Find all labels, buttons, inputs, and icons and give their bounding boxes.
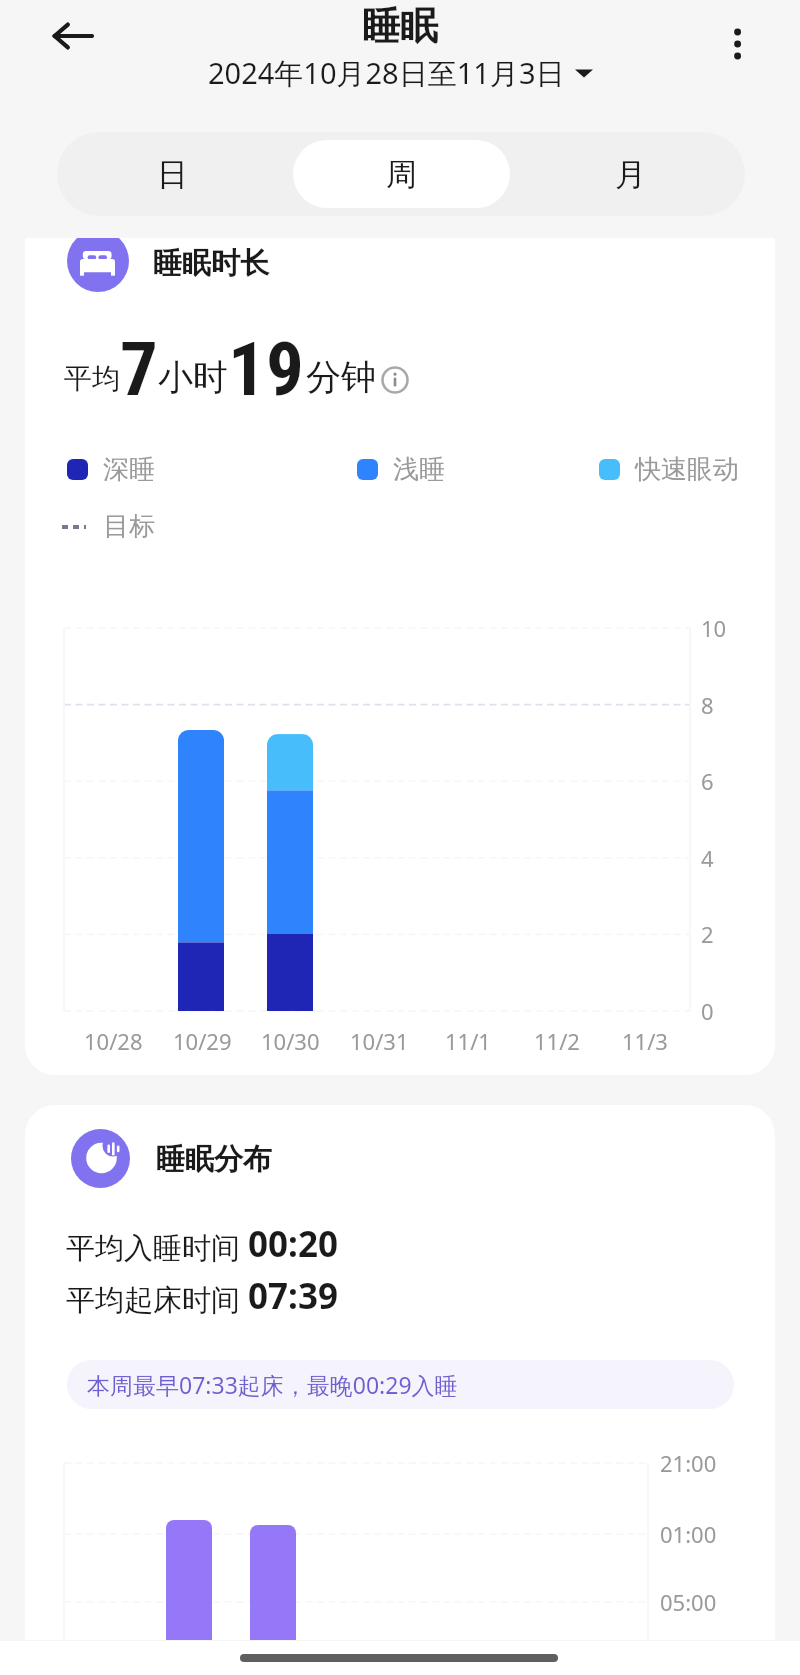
staticText: 7 <box>120 325 158 413</box>
staticText: 00:20 <box>248 1220 338 1268</box>
staticText: 6 <box>701 766 714 796</box>
staticText: 10 <box>701 613 727 643</box>
staticText: 快速眼动 <box>635 453 739 486</box>
staticText: 平均 <box>64 361 120 396</box>
staticText: 0 <box>701 996 714 1026</box>
staticText: 11/2 <box>534 1026 580 1056</box>
staticText: 07:39 <box>248 1272 338 1320</box>
staticText: 8 <box>701 690 714 720</box>
staticText: 周 <box>386 155 417 194</box>
staticText: 睡眠时长 <box>153 245 269 282</box>
staticText: 2 <box>701 919 714 949</box>
button[interactable]: 2024年10月28日至11月3日 <box>208 53 593 93</box>
staticText: 10/28 <box>84 1026 143 1056</box>
staticText: 10/29 <box>173 1026 232 1056</box>
staticText: 本周最早07:33起床，最晚00:29入睡 <box>87 1369 458 1400</box>
button[interactable]: 周 <box>293 140 510 208</box>
staticText: 平均入睡时间 <box>66 1230 240 1267</box>
button[interactable]: Info <box>381 366 409 394</box>
staticText: 小时 <box>158 355 228 399</box>
staticText: 月 <box>615 155 646 194</box>
staticText: 01:00 <box>660 1519 717 1549</box>
staticText: 05:00 <box>660 1587 717 1617</box>
button[interactable]: More options <box>702 8 774 80</box>
staticText: 11/1 <box>445 1026 491 1056</box>
staticText: 睡眠分布 <box>156 1141 272 1178</box>
staticText: 日 <box>157 155 188 194</box>
button[interactable]: 日 <box>63 140 281 208</box>
staticText: 2024年10月28日至11月3日 <box>208 53 565 93</box>
button[interactable]: Back <box>36 0 108 72</box>
staticText: 21:00 <box>660 1448 717 1478</box>
staticText: 4 <box>701 843 714 873</box>
staticText: 平均起床时间 <box>66 1282 240 1319</box>
staticText: 10/30 <box>261 1026 320 1056</box>
staticText: 目标 <box>103 510 155 543</box>
button[interactable]: 月 <box>522 140 739 208</box>
staticText: 11/3 <box>622 1026 668 1056</box>
staticText: 分钟 <box>306 355 376 399</box>
staticText: 深睡 <box>103 453 155 486</box>
staticText: 睡眠 <box>362 2 438 50</box>
staticText: 10/31 <box>350 1026 409 1056</box>
staticText: 浅睡 <box>393 453 445 486</box>
staticText: 19 <box>228 325 304 413</box>
